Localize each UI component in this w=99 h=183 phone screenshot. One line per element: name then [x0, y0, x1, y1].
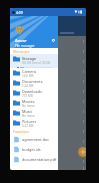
staticText: Storage: [22, 56, 37, 61]
button[interactable]: Pictures: [10, 118, 58, 128]
staticText: Camera: [22, 69, 36, 74]
staticText: budget.xls: [22, 147, 41, 152]
button[interactable]: [10, 66, 86, 76]
staticText: documentation.pdf: [22, 157, 57, 162]
staticText: 9.5 GB free of 32 GB: [22, 61, 51, 65]
button[interactable]: [10, 156, 86, 166]
button[interactable]: Music: [10, 108, 58, 118]
button[interactable]: Movies: [10, 98, 58, 108]
button[interactable]: Settings: [51, 38, 55, 42]
staticText: Music: [22, 109, 33, 114]
staticText: Movies: [22, 99, 35, 104]
staticText: 4:09: [16, 10, 23, 15]
staticText: No items: [22, 104, 35, 108]
staticText: No items: [22, 114, 35, 118]
staticText: 14.6 MB: [22, 74, 34, 78]
staticText: Downloads: [22, 89, 42, 94]
button[interactable]: [10, 76, 86, 86]
button[interactable]: Documents: [10, 78, 58, 88]
button[interactable]: [10, 46, 86, 56]
button[interactable]: [10, 116, 86, 126]
staticText: 5.22 MB: [22, 124, 34, 128]
staticText: Documents: [22, 79, 43, 84]
staticText: agreement.doc: [22, 137, 50, 142]
staticText: 1.24 MB: [22, 84, 34, 88]
button[interactable]: Add: [78, 147, 86, 157]
button[interactable]: [10, 56, 86, 66]
button[interactable]: [10, 136, 86, 146]
button[interactable]: [10, 96, 86, 106]
button[interactable]: Downloads: [10, 88, 58, 98]
button[interactable]: [10, 36, 86, 46]
staticText: 731 MB: [22, 94, 33, 98]
staticText: File manager: [15, 44, 35, 48]
button[interactable]: Storage: [10, 54, 58, 68]
button[interactable]: [10, 106, 86, 116]
button[interactable]: agreement.doc: [10, 134, 58, 144]
staticText: Shortcuts: [13, 49, 30, 54]
button[interactable]: documentation.pdf: [10, 154, 58, 164]
button[interactable]: [10, 86, 86, 96]
button[interactable]: [10, 126, 86, 136]
staticText: Pictures: [22, 119, 37, 124]
staticText: Favorites: [13, 129, 29, 134]
button[interactable]: [10, 166, 86, 170]
button[interactable]: Camera: [10, 68, 58, 78]
button[interactable]: budget.xls: [10, 144, 58, 154]
staticText: Anvar: [15, 38, 27, 44]
button[interactable]: [10, 146, 86, 156]
